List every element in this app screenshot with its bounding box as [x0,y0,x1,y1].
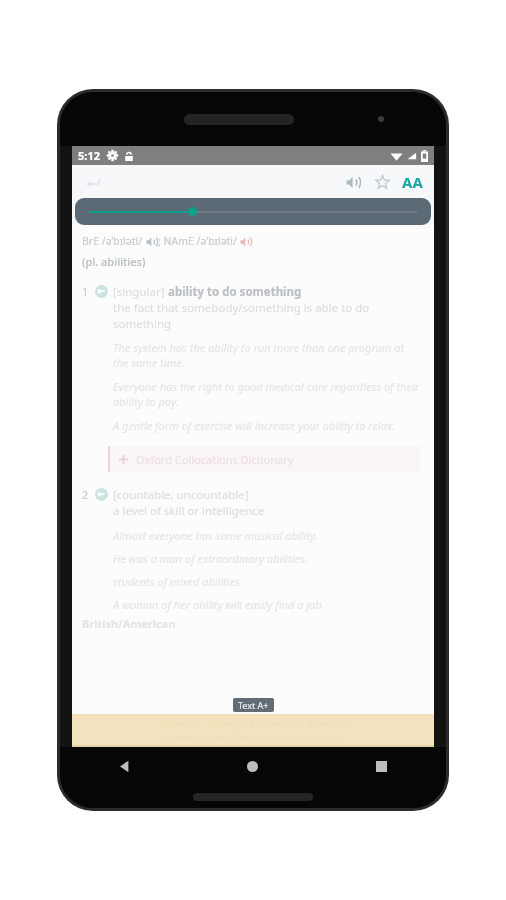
staticText: a level of skill or intelligence [113,503,265,519]
button[interactable]: Add to favorites [368,168,396,196]
staticText: British/American [82,616,176,631]
button[interactable]: Play British pronunciation [145,235,158,248]
staticText: [countable, uncountable] [113,487,249,503]
button[interactable]: Recent apps [317,747,446,786]
staticText: AA [402,172,423,192]
staticText: students of mixed abilities [113,574,240,589]
staticText: He was a man of extraordinary abilities. [113,551,308,566]
staticText: A gentle form of exercise will increase … [113,418,396,433]
staticText: 1 [82,284,89,299]
staticText: the fact that somebody/something is able… [113,300,424,331]
button[interactable]: Pronounce [339,168,367,196]
staticText: 2 [82,487,89,502]
staticText: BrE /əˈbɪləti/ [82,234,143,248]
staticText: The system has the ability to run more t… [113,340,420,370]
button[interactable]: Oxford Collocations Dictionary [108,446,420,472]
staticText: A woman of her ability will easily find … [113,597,325,612]
staticText: Text A+ [238,699,269,711]
button[interactable] [75,198,431,225]
staticText: Almost everyone has some musical ability… [113,528,318,543]
button[interactable]: Back [60,747,188,786]
staticText: 5:12 [78,148,100,163]
staticText: (pl. abilities) [82,254,146,269]
button[interactable]: Back [79,169,105,195]
staticText: Everyone has the right to good medical c… [113,379,420,409]
staticText: ; NAmE /əˈbɪləti/ [158,234,237,248]
button[interactable]: Play American pronunciation [239,235,252,248]
staticText: Oxford Collocations Dictionary [136,452,294,467]
staticText: ability to do something [165,284,302,300]
staticText: [singular] [113,284,165,300]
button[interactable]: Home [188,747,317,786]
button[interactable]: Text size [397,167,427,197]
